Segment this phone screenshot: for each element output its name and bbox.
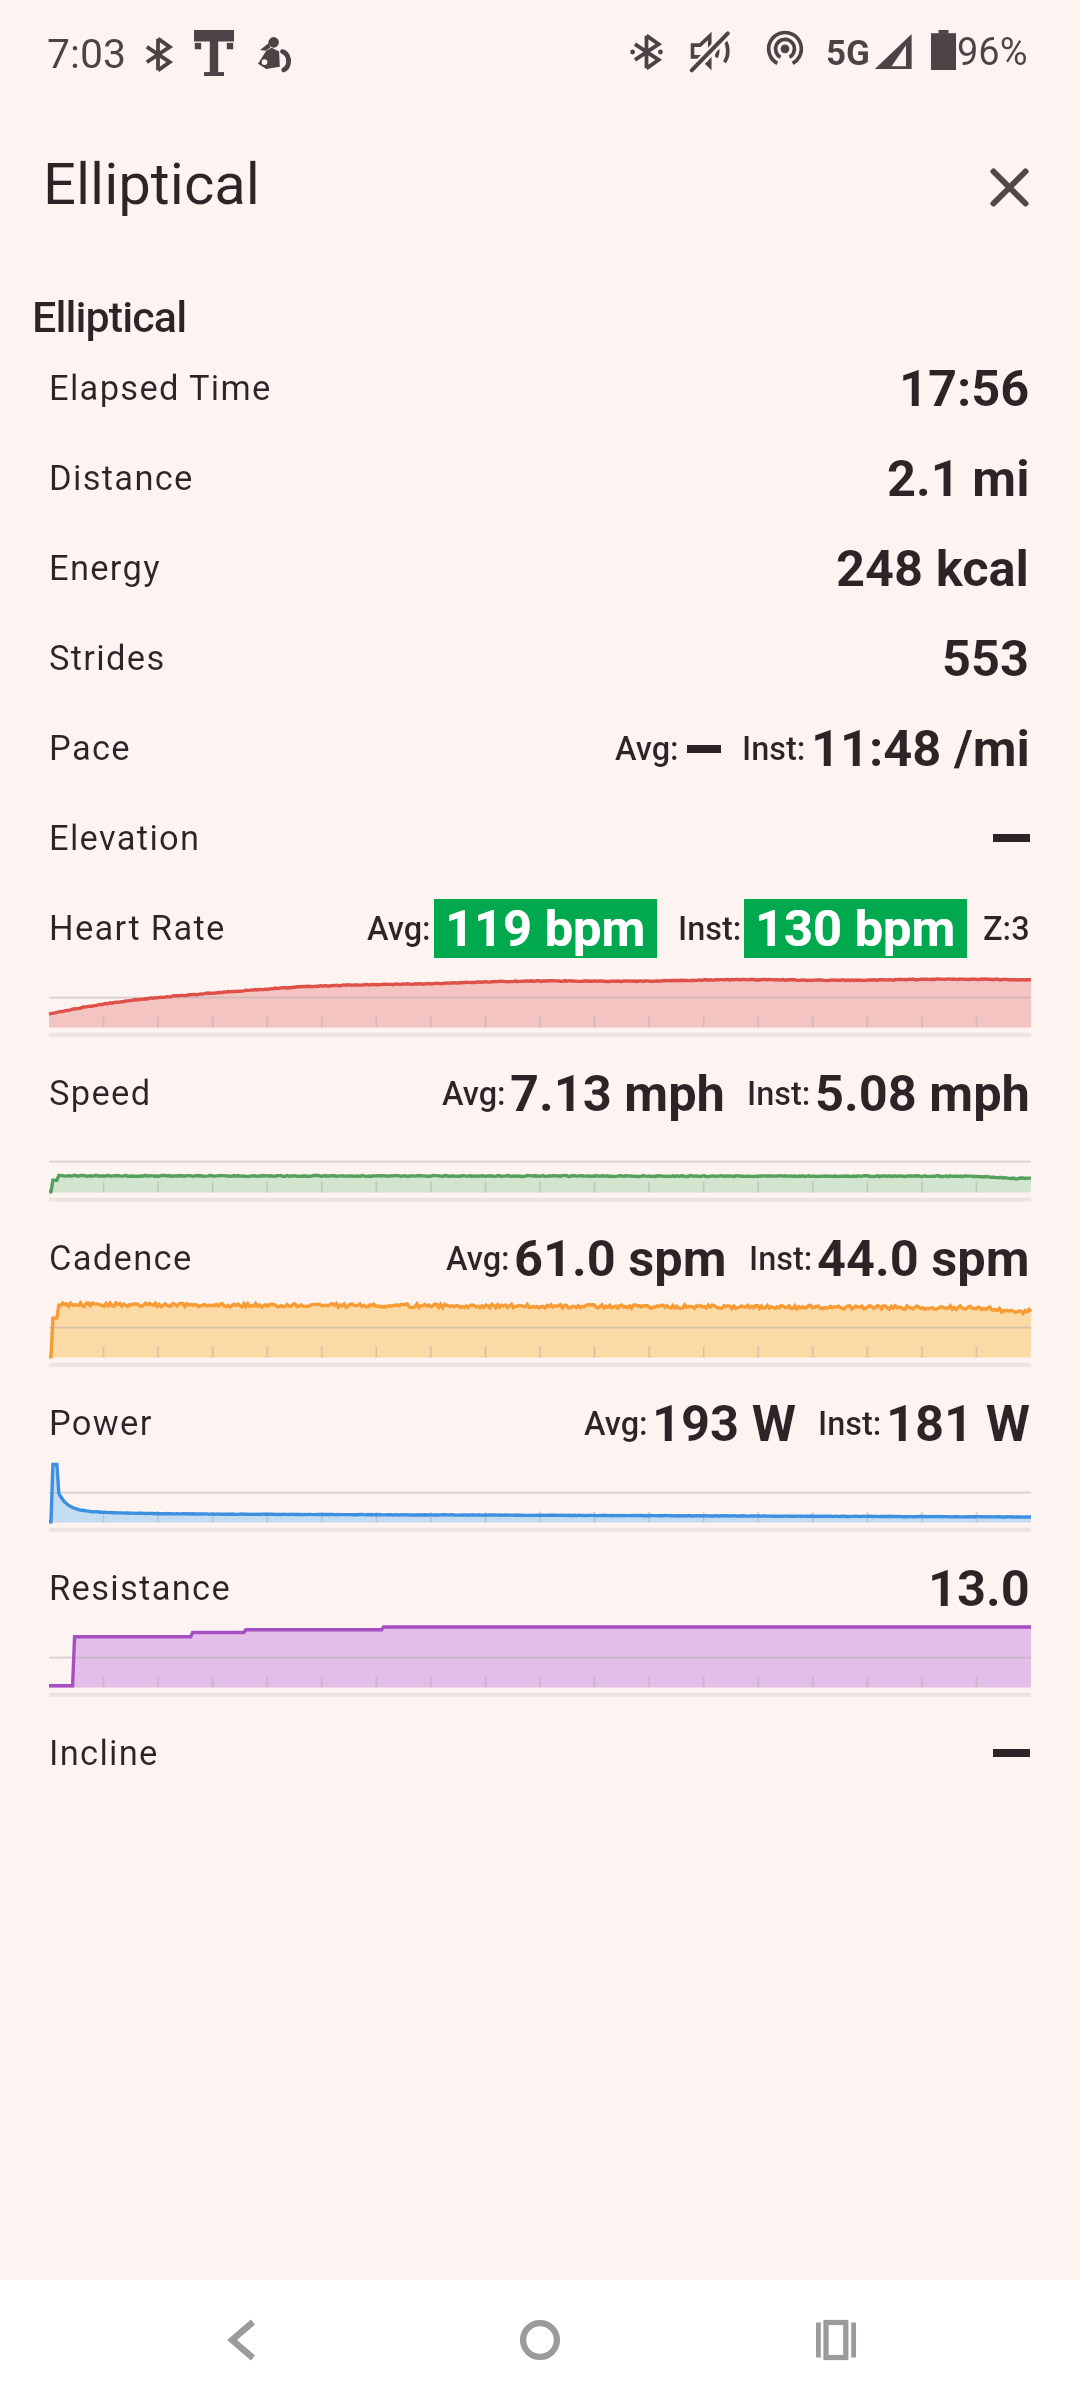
staticText: 11:48 /mi [811, 719, 1030, 778]
staticText: Avg: [584, 1405, 648, 1443]
staticText: 96% [957, 30, 1028, 75]
staticText: Avg: [442, 1075, 506, 1113]
button[interactable]: Elevation [0, 793, 1080, 883]
staticText: 44.0 spm [817, 1229, 1030, 1288]
button[interactable]: Energy [0, 523, 1080, 613]
staticText: 181 W [886, 1394, 1030, 1453]
staticText: Incline [49, 1733, 159, 1773]
button[interactable]: Power [0, 1378, 1080, 1543]
staticText: Cadence [49, 1238, 193, 1278]
staticText: 193 W [652, 1394, 796, 1453]
staticText: Strides [49, 638, 166, 678]
button[interactable]: Resistance [0, 1543, 1080, 1708]
staticText: Avg: [367, 910, 431, 948]
staticText: 7.13 mph [510, 1064, 725, 1123]
staticText: Inst: [749, 1240, 813, 1278]
button[interactable]: Strides [0, 613, 1080, 703]
staticText: Z:3 [983, 910, 1030, 948]
button[interactable]: Distance [0, 433, 1080, 523]
button[interactable]: Back [182, 2280, 302, 2400]
staticText: Avg: [446, 1240, 510, 1278]
button[interactable]: Heart Rate [0, 883, 1080, 1048]
staticText: Inst: [818, 1405, 882, 1443]
button[interactable]: Pace [0, 703, 1080, 793]
staticText: 5.08 mph [815, 1064, 1030, 1123]
staticText: 13.0 [928, 1559, 1030, 1618]
staticText: Speed [49, 1073, 152, 1113]
button[interactable]: Home [480, 2280, 600, 2400]
button[interactable]: Cadence [0, 1213, 1080, 1378]
staticText: 130 bpm [755, 899, 956, 958]
staticText: Power [49, 1403, 153, 1443]
staticText: 5G [826, 33, 870, 74]
staticText: Inst: [678, 910, 742, 948]
staticText: Energy [49, 548, 161, 588]
staticText: Pace [49, 728, 131, 768]
staticText: 7:03 [47, 30, 127, 78]
staticText: 553 [942, 629, 1030, 688]
staticText: 17:56 [899, 359, 1030, 418]
staticText: Avg: [615, 730, 679, 768]
staticText: Elevation [49, 818, 201, 858]
button[interactable]: Incline [0, 1708, 1080, 1798]
staticText: 2.1 mi [887, 449, 1030, 508]
staticText: Elapsed Time [49, 368, 272, 408]
staticText: Inst: [747, 1075, 811, 1113]
staticText: Heart Rate [49, 908, 226, 948]
staticText: 119 bpm [445, 899, 646, 958]
staticText: Distance [49, 458, 194, 498]
staticText: Inst: [742, 730, 806, 768]
staticText: 248 kcal [836, 539, 1030, 598]
button[interactable]: Speed [0, 1048, 1080, 1213]
staticText: Elliptical [32, 292, 187, 342]
button[interactable]: Elapsed Time [0, 343, 1080, 433]
staticText: Resistance [49, 1568, 232, 1608]
staticText: 61.0 spm [514, 1229, 727, 1288]
staticText: Elliptical [43, 150, 260, 218]
button[interactable]: Close [964, 139, 1054, 229]
button[interactable]: Recent apps [776, 2280, 896, 2400]
